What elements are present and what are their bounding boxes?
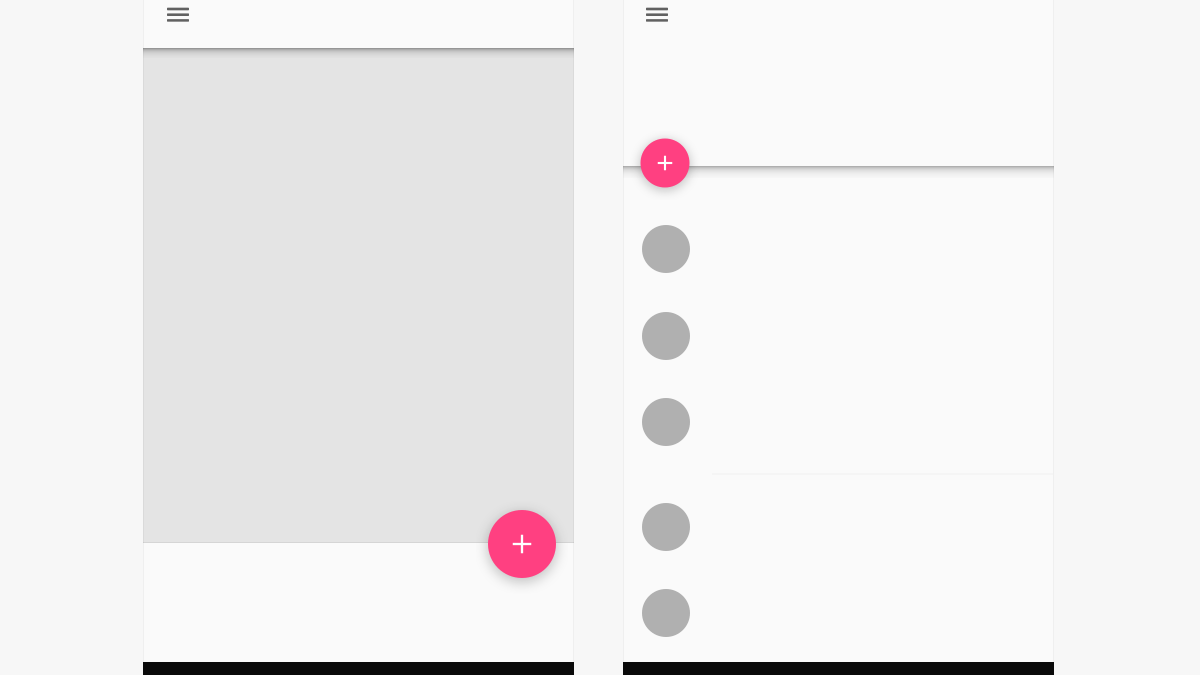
button[interactable]: List item xyxy=(624,570,1053,656)
button[interactable]: Add xyxy=(488,510,556,578)
button[interactable]: List item xyxy=(624,484,1053,570)
button[interactable]: List item xyxy=(624,206,1053,292)
button[interactable]: List item xyxy=(624,379,1053,465)
button[interactable]: Open navigation menu xyxy=(633,0,681,39)
button[interactable]: Add xyxy=(640,138,689,187)
button[interactable]: List item xyxy=(624,293,1053,379)
button[interactable]: Open navigation menu xyxy=(154,0,202,39)
